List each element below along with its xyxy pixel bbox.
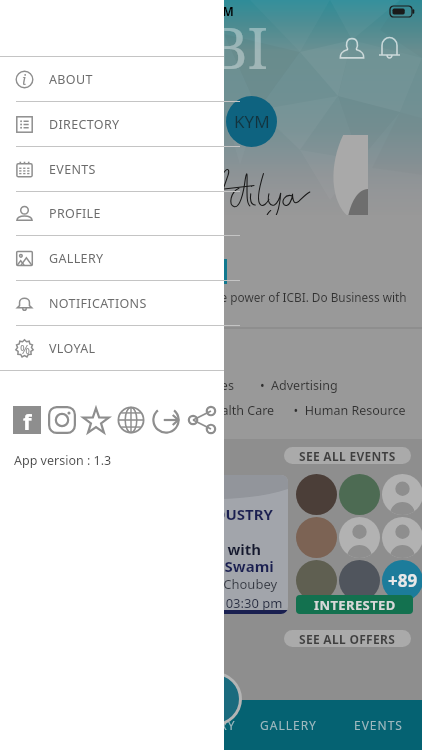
- staticText: Experience the power of ICBI. Do Busines…: [145, 289, 407, 305]
- staticText: PROFILE: [49, 205, 101, 222]
- staticText: Shiyam Swami: [166, 556, 274, 576]
- button[interactable]: Attendee: [382, 474, 422, 515]
- staticText: DIRECTORY: [162, 717, 236, 733]
- button[interactable]: Attendee: [296, 560, 337, 601]
- staticText: SEE ALL EVENTS: [299, 448, 396, 464]
- staticText: THE INDUSTRY: [164, 504, 273, 524]
- button[interactable]: Share: [188, 406, 216, 434]
- button[interactable]: DIRECTORY: [155, 700, 243, 750]
- button[interactable]: PROFILE: [0, 191, 224, 235]
- staticText: EVENTS: [49, 161, 96, 178]
- staticText: App version : 1.3: [14, 452, 112, 469]
- button[interactable]: i: [0, 57, 224, 101]
- staticText: A show with: [170, 539, 261, 559]
- button[interactable]: GALLERY: [244, 700, 332, 750]
- staticText: 3:11 PM: [188, 3, 234, 19]
- staticText: ABOUT: [49, 71, 93, 88]
- button[interactable]: Notifications: [377, 35, 402, 60]
- button[interactable]: Attendee: [339, 474, 380, 515]
- button[interactable]: GALLERY: [0, 236, 224, 280]
- staticText: SEE ALL OFFERS: [299, 631, 396, 647]
- staticText: KYM: [234, 110, 270, 133]
- staticText: DIRECTORY: [49, 116, 120, 133]
- button[interactable]: Facebook: [13, 406, 41, 434]
- staticText: • Services • Advertising: [175, 377, 338, 394]
- staticText: i: [22, 70, 27, 89]
- button[interactable]: Website: [117, 406, 145, 434]
- staticText: GALLERY: [49, 250, 104, 267]
- staticText: %: [20, 341, 30, 357]
- staticText: EVENTS: [354, 717, 403, 733]
- button[interactable]: Logout: [152, 406, 180, 434]
- button[interactable]: THE INDUSTRY: [158, 475, 288, 614]
- button[interactable]: SEE ALL OFFERS: [284, 630, 411, 647]
- button[interactable]: Attendee: [339, 560, 380, 601]
- staticText: Bhupen Choubey: [172, 575, 278, 593]
- button[interactable]: Profile: [339, 35, 365, 61]
- staticText: • Health Care • Human Resource: [194, 402, 406, 419]
- staticText: ICBI: [156, 9, 269, 85]
- button[interactable]: Favourites: [82, 406, 110, 434]
- button[interactable]: EVENTS: [0, 147, 224, 191]
- button[interactable]: Attendee: [382, 517, 422, 558]
- button[interactable]: EVENTS: [334, 700, 422, 750]
- button[interactable]: KYM: [226, 96, 277, 147]
- staticText: f: [23, 406, 32, 434]
- staticText: INTERESTED: [314, 596, 396, 614]
- staticText: VLOYAL: [49, 340, 96, 357]
- staticText: +89: [388, 569, 418, 592]
- button[interactable]: %: [0, 326, 224, 370]
- staticText: GALLERY: [260, 717, 317, 733]
- staticText: NOTIFICATIONS: [49, 295, 147, 312]
- button[interactable]: Attendee: [296, 517, 337, 558]
- button[interactable]: Scan QR code: [191, 675, 239, 723]
- button[interactable]: DIRECTORY: [0, 102, 224, 146]
- button[interactable]: Instagram: [48, 406, 76, 434]
- button[interactable]: NOTIFICATIONS: [0, 281, 224, 325]
- staticText: 2020 | 03:30 pm: [182, 594, 283, 612]
- button[interactable]: Attendee: [382, 560, 422, 601]
- button[interactable]: INTERESTED: [296, 595, 413, 614]
- button[interactable]: Attendee: [339, 517, 380, 558]
- button[interactable]: SEE ALL EVENTS: [284, 447, 411, 464]
- button[interactable]: Attendee: [296, 474, 337, 515]
